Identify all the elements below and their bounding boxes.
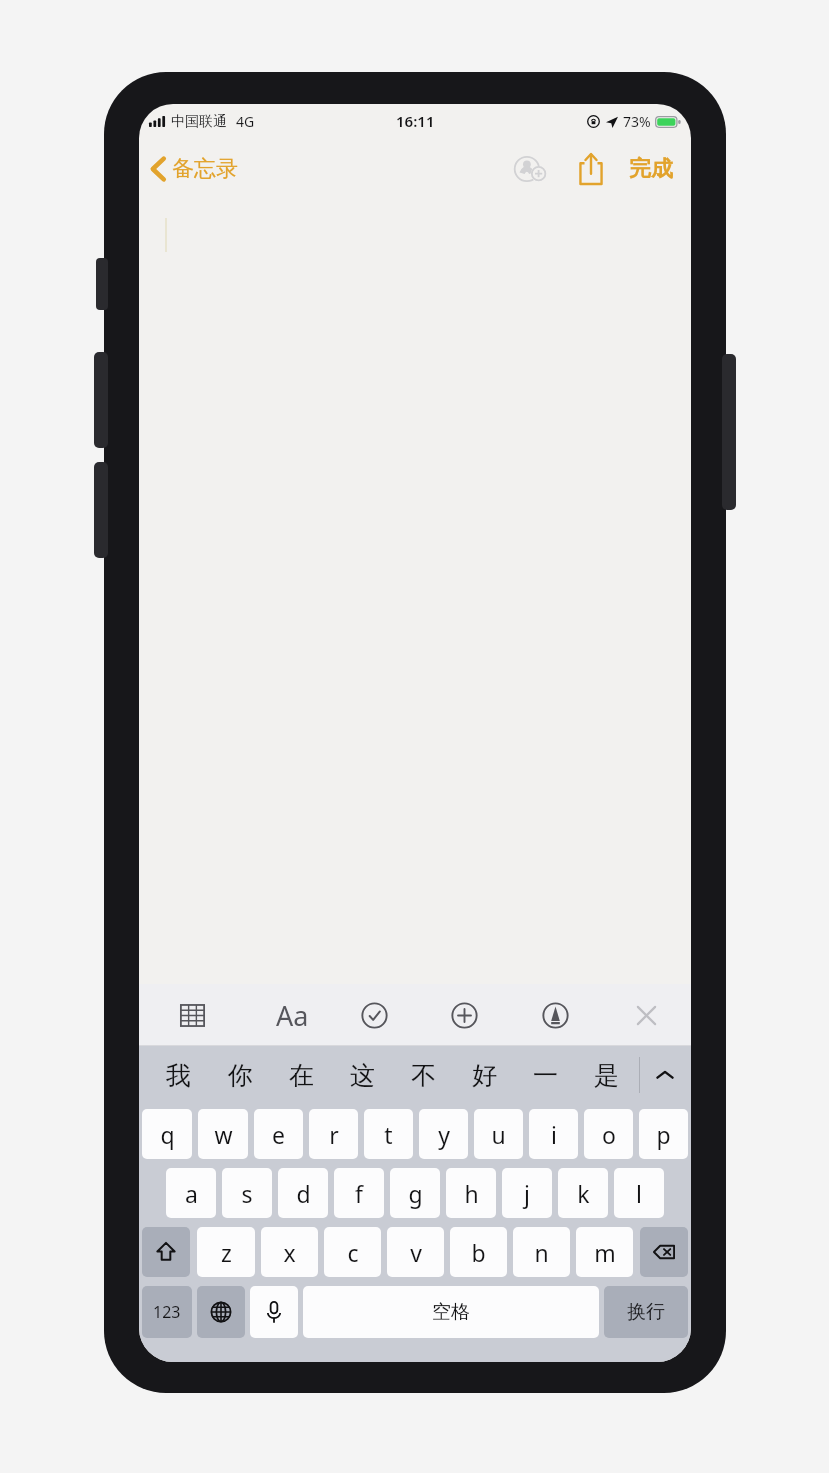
staticText: t xyxy=(384,1119,393,1150)
staticText: x xyxy=(283,1237,296,1268)
button[interactable]: u xyxy=(474,1109,523,1159)
button[interactable]: j xyxy=(502,1168,552,1218)
button[interactable]: o xyxy=(584,1109,633,1159)
button[interactable]: Draw xyxy=(532,992,578,1038)
button[interactable]: r xyxy=(309,1109,358,1159)
button[interactable]: 我 xyxy=(147,1046,209,1104)
button[interactable]: z xyxy=(197,1227,255,1277)
staticText: s xyxy=(241,1178,253,1209)
button[interactable]: 123 xyxy=(142,1286,192,1338)
staticText: 我 xyxy=(166,1060,191,1091)
button[interactable]: b xyxy=(450,1227,507,1277)
button[interactable]: 完成 xyxy=(619,147,683,191)
staticText: v xyxy=(410,1237,422,1268)
staticText: 不 xyxy=(411,1060,436,1091)
button[interactable]: q xyxy=(142,1109,192,1159)
staticText: f xyxy=(355,1178,363,1209)
staticText: a xyxy=(185,1178,198,1209)
staticText: 完成 xyxy=(629,155,673,183)
staticText: k xyxy=(577,1178,590,1209)
staticText: d xyxy=(296,1178,311,1209)
button[interactable]: Text format xyxy=(260,992,306,1038)
button[interactable]: Table xyxy=(169,992,215,1038)
button[interactable]: l xyxy=(614,1168,664,1218)
staticText: l xyxy=(636,1178,642,1209)
button[interactable]: x xyxy=(261,1227,318,1277)
button[interactable]: 一 xyxy=(515,1046,576,1104)
staticText: m xyxy=(594,1237,616,1268)
button[interactable]: t xyxy=(364,1109,413,1159)
button[interactable]: 你 xyxy=(209,1046,271,1104)
button[interactable]: 不 xyxy=(393,1046,454,1104)
staticText: Aa xyxy=(276,997,309,1034)
button[interactable]: k xyxy=(558,1168,608,1218)
staticText: u xyxy=(491,1119,506,1150)
staticText: i xyxy=(551,1119,557,1150)
staticText: h xyxy=(464,1178,479,1209)
button[interactable]: 是 xyxy=(576,1046,637,1104)
staticText: 在 xyxy=(289,1060,314,1091)
button[interactable]: y xyxy=(419,1109,468,1159)
button[interactable]: Backspace xyxy=(640,1227,688,1277)
staticText: 16:11 xyxy=(396,111,435,131)
staticText: p xyxy=(656,1119,671,1150)
button[interactable]: 在 xyxy=(271,1046,332,1104)
staticText: o xyxy=(602,1119,616,1150)
button[interactable]: s xyxy=(222,1168,272,1218)
button[interactable]: Share xyxy=(569,147,613,191)
staticText: y xyxy=(438,1119,450,1150)
staticText: 73% xyxy=(623,112,651,131)
staticText: w xyxy=(214,1119,233,1150)
button[interactable]: Add attachment xyxy=(441,992,487,1038)
button[interactable]: 好 xyxy=(454,1046,515,1104)
staticText: 好 xyxy=(472,1060,497,1091)
staticText: 空格 xyxy=(432,1300,470,1324)
staticText: 是 xyxy=(594,1060,619,1091)
staticText: 一 xyxy=(533,1060,558,1091)
staticText: e xyxy=(272,1119,285,1150)
button[interactable]: Switch keyboard xyxy=(197,1286,245,1338)
staticText: c xyxy=(347,1237,359,1268)
staticText: z xyxy=(221,1237,232,1268)
button[interactable]: v xyxy=(387,1227,444,1277)
button[interactable]: 空格 xyxy=(303,1286,599,1338)
staticText: 4G xyxy=(236,112,255,131)
staticText: j xyxy=(524,1178,530,1209)
button[interactable]: 这 xyxy=(332,1046,393,1104)
staticText: 你 xyxy=(228,1060,253,1091)
button[interactable]: Dictate xyxy=(250,1286,298,1338)
button[interactable]: 备忘录 xyxy=(139,149,248,189)
staticText: b xyxy=(471,1237,486,1268)
button[interactable]: g xyxy=(390,1168,440,1218)
staticText: n xyxy=(534,1237,549,1268)
button[interactable]: 换行 xyxy=(604,1286,688,1338)
staticText: r xyxy=(329,1119,339,1150)
button[interactable]: m xyxy=(576,1227,633,1277)
button[interactable]: c xyxy=(324,1227,381,1277)
staticText: g xyxy=(408,1178,423,1209)
button[interactable]: e xyxy=(254,1109,303,1159)
button[interactable]: Add people xyxy=(509,146,555,192)
staticText: 这 xyxy=(350,1060,375,1091)
staticText: 123 xyxy=(153,1301,181,1323)
button[interactable]: a xyxy=(166,1168,216,1218)
button[interactable]: h xyxy=(446,1168,496,1218)
button[interactable]: w xyxy=(198,1109,248,1159)
button[interactable]: d xyxy=(278,1168,328,1218)
staticText: q xyxy=(160,1119,175,1150)
button[interactable]: i xyxy=(529,1109,578,1159)
button[interactable]: Checklist xyxy=(351,992,397,1038)
button[interactable]: f xyxy=(334,1168,384,1218)
button[interactable]: More candidates xyxy=(639,1046,691,1104)
button[interactable]: n xyxy=(513,1227,570,1277)
button[interactable]: Close keyboard xyxy=(623,992,669,1038)
staticText: 中国联通 xyxy=(171,113,227,131)
staticText: 换行 xyxy=(627,1300,665,1324)
staticText: 备忘录 xyxy=(172,155,238,183)
button[interactable]: Shift xyxy=(142,1227,190,1277)
button[interactable]: p xyxy=(639,1109,688,1159)
